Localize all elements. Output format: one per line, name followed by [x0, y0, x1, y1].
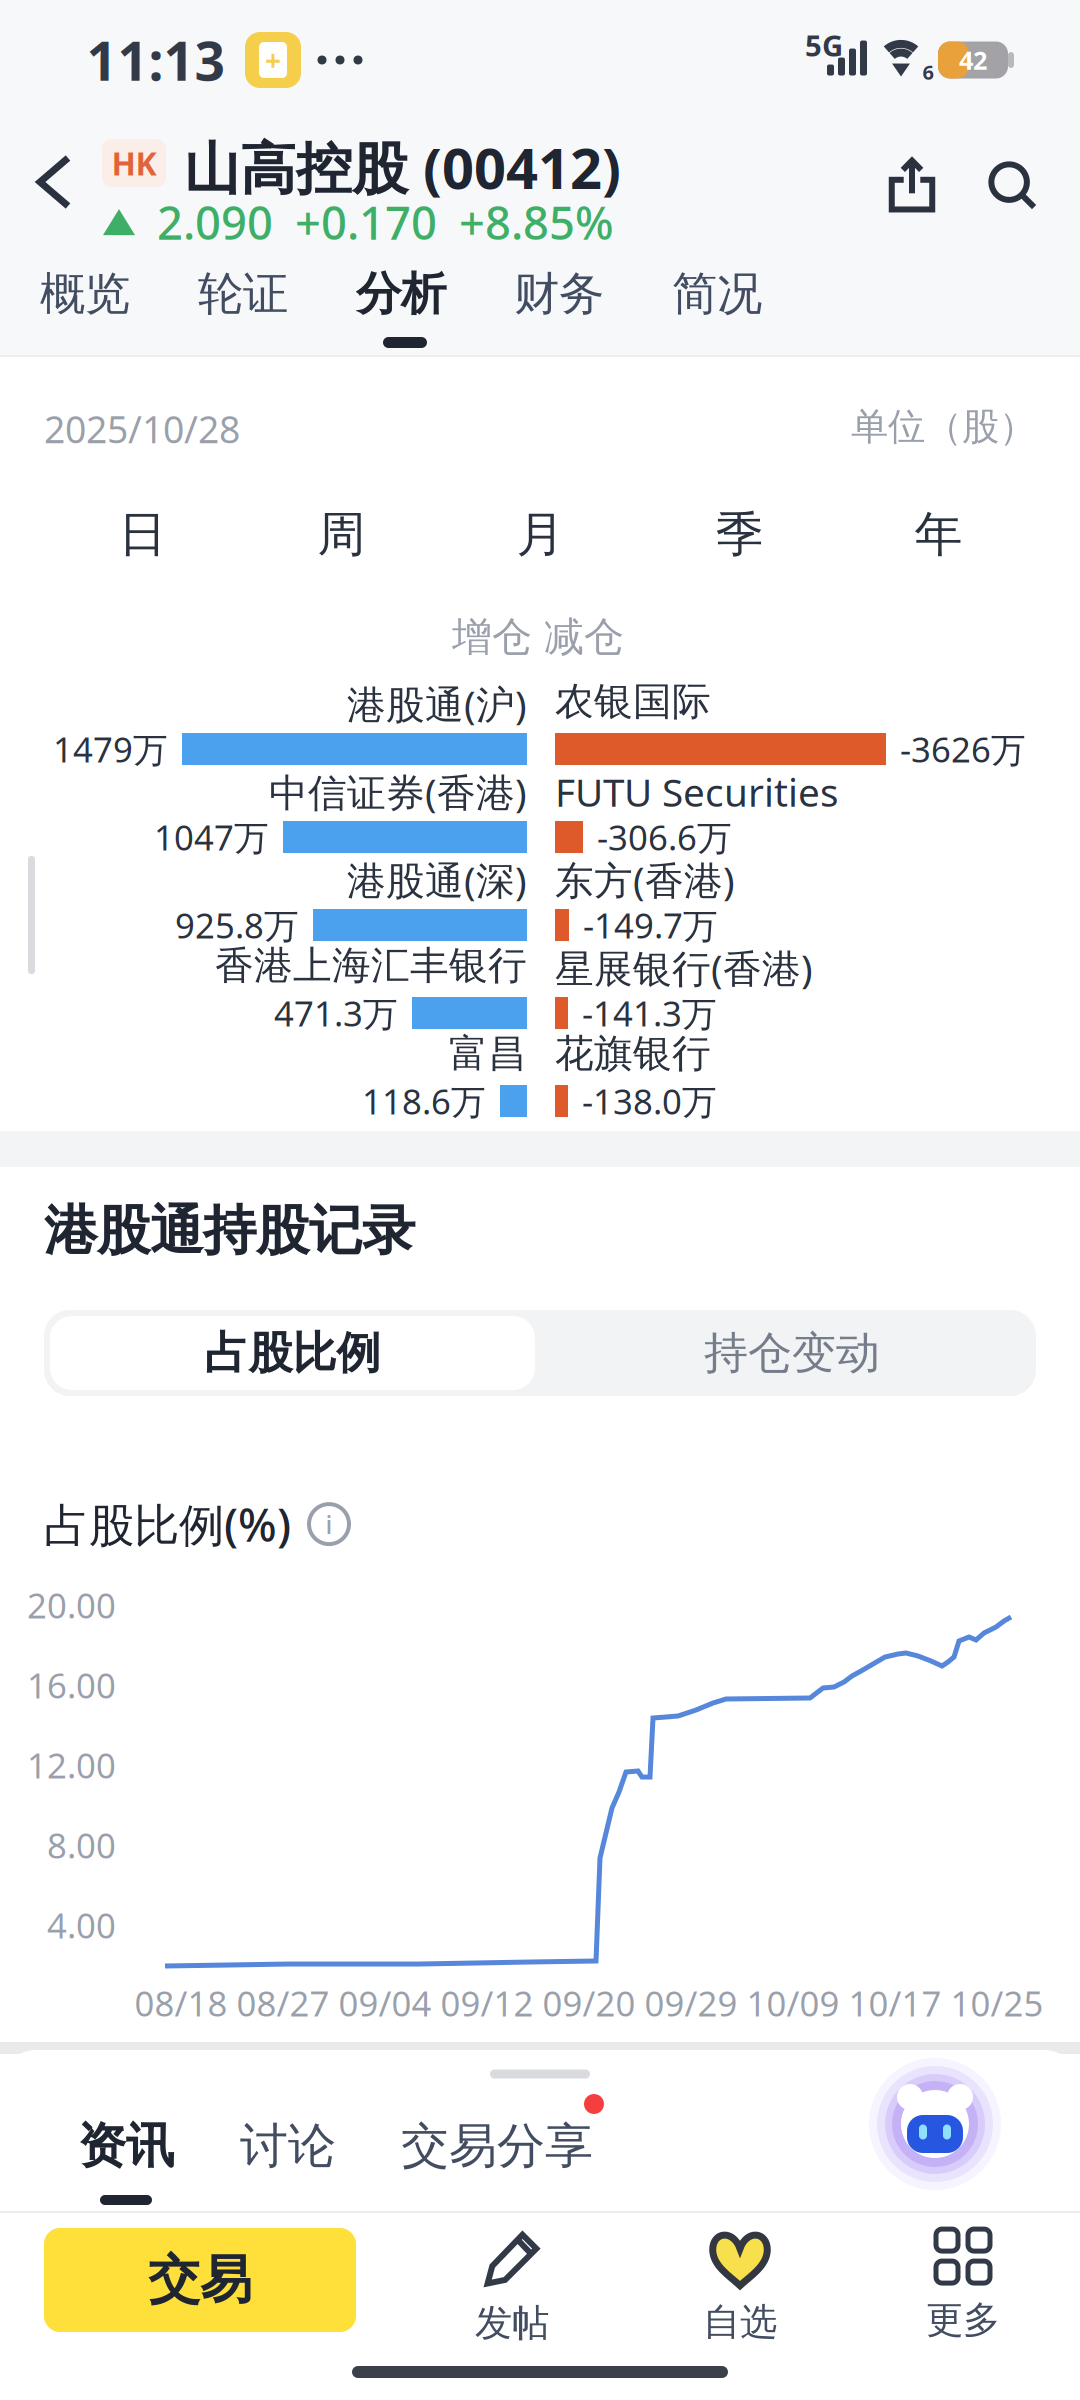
staticText: 自选 — [703, 2299, 777, 2345]
button[interactable]: 持仓变动 — [552, 1316, 1032, 1390]
staticText: 香港上海汇丰银行 — [215, 942, 527, 989]
button[interactable]: Search — [976, 149, 1048, 221]
staticText: 更多 — [926, 2297, 1000, 2343]
staticText: 2.090 — [157, 192, 273, 252]
staticText: 发帖 — [475, 2300, 549, 2346]
staticText: 星展银行(香港) — [555, 942, 813, 993]
staticText: 118.6万 — [362, 1078, 486, 1124]
button[interactable]: 概览 — [40, 266, 130, 322]
button[interactable]: 交易 — [44, 2228, 356, 2332]
staticText: 4.00 — [47, 1902, 116, 1948]
staticText: 年 — [914, 505, 962, 564]
button[interactable]: AI assistant — [873, 2062, 997, 2186]
staticText: 持仓变动 — [704, 1326, 880, 1380]
button[interactable]: 月 — [441, 505, 640, 564]
staticText: 农银国际 — [555, 678, 711, 725]
button[interactable]: 自选 — [703, 2231, 777, 2345]
button[interactable]: 年 — [839, 505, 1038, 564]
button[interactable]: 占股比例 — [50, 1316, 535, 1390]
staticText: 日 — [118, 505, 166, 564]
staticText: -306.6万 — [597, 814, 732, 860]
staticText: 港股通持股记录 — [44, 1198, 415, 1263]
staticText: 港股通(深) — [347, 854, 527, 905]
staticText: 6 — [922, 59, 933, 85]
staticText: 16.00 — [27, 1662, 116, 1708]
staticText: 增仓 — [452, 612, 532, 661]
staticText: +8.85% — [459, 192, 614, 252]
staticText: 42 — [959, 43, 987, 77]
staticText: 08/27 — [236, 1980, 329, 2026]
staticText: 1047万 — [154, 814, 269, 860]
staticText: FUTU Securities — [555, 766, 839, 817]
staticText: 季 — [715, 505, 763, 564]
button[interactable]: 简况 — [672, 266, 762, 322]
button[interactable]: 更多 — [926, 2229, 1000, 2343]
staticText: 09/29 — [644, 1980, 737, 2026]
staticText: 月 — [516, 505, 564, 564]
staticText: 08/18 — [134, 1980, 227, 2026]
staticText: 财务 — [514, 266, 604, 322]
staticText: 11:13 — [86, 25, 225, 95]
staticText: + — [265, 41, 281, 79]
button[interactable]: Share — [877, 147, 947, 223]
staticText: 20.00 — [27, 1582, 116, 1628]
staticText: 交易 — [148, 2248, 252, 2312]
staticText: 占股比例(%) — [44, 1494, 291, 1554]
staticText: 471.3万 — [274, 990, 398, 1036]
staticText: 占股比例 — [204, 1326, 380, 1380]
staticText: 中信证券(香港) — [269, 766, 527, 817]
staticText: 周 — [317, 505, 365, 564]
staticText: 分析 — [356, 266, 446, 322]
staticText: 12.00 — [27, 1742, 116, 1788]
staticText: HK — [111, 142, 156, 184]
staticText: -141.3万 — [582, 990, 717, 1036]
button[interactable]: 轮证 — [198, 266, 288, 322]
staticText: 花旗银行 — [555, 1030, 711, 1077]
staticText: 资讯 — [78, 2116, 174, 2175]
staticText: 轮证 — [198, 266, 288, 322]
staticText: -149.7万 — [583, 902, 718, 948]
staticText: 山高控股 (00412) — [184, 130, 621, 204]
staticText: 港股通(沪) — [347, 678, 527, 729]
staticText: 单位（股） — [851, 404, 1036, 450]
staticText: 5G — [805, 25, 843, 64]
staticText: 2025/10/28 — [44, 404, 240, 454]
button[interactable]: 财务 — [514, 266, 604, 322]
button[interactable]: 日 — [43, 505, 242, 564]
staticText: 讨论 — [240, 2116, 336, 2175]
staticText: 1479万 — [53, 726, 168, 772]
staticText: 简况 — [672, 266, 762, 322]
staticText: -138.0万 — [582, 1078, 717, 1124]
staticText: 10/09 — [746, 1980, 839, 2026]
button[interactable]: 分析 — [356, 266, 446, 322]
staticText: 925.8万 — [175, 902, 299, 948]
staticText: 富昌 — [449, 1030, 527, 1077]
button[interactable]: 资讯 — [78, 2116, 174, 2175]
staticText: 8.00 — [47, 1822, 116, 1868]
button[interactable]: 讨论 — [240, 2116, 336, 2175]
button[interactable]: 季 — [640, 505, 839, 564]
button[interactable]: 周 — [242, 505, 441, 564]
button[interactable]: 发帖 — [475, 2230, 549, 2346]
staticText: 东方(香港) — [555, 854, 735, 905]
staticText: 10/17 — [848, 1980, 941, 2026]
staticText: 09/04 — [338, 1980, 431, 2026]
staticText: -3626万 — [900, 726, 1026, 772]
staticText: 减仓 — [544, 612, 624, 661]
button[interactable]: 交易分享 — [401, 2116, 593, 2175]
staticText: +0.170 — [295, 192, 437, 252]
staticText: 概览 — [40, 266, 130, 322]
staticText: i — [325, 1507, 332, 1541]
staticText: 10/25 — [950, 1980, 1043, 2026]
staticText: 09/20 — [542, 1980, 635, 2026]
button[interactable]: Back — [20, 138, 88, 226]
staticText: 09/12 — [440, 1980, 533, 2026]
staticText: 交易分享 — [401, 2116, 593, 2175]
